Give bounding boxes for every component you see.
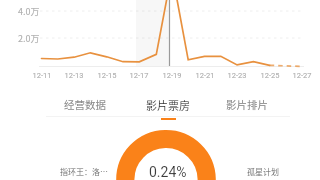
button[interactable]: 影片票房: [138, 96, 198, 121]
staticText: 12-21: [189, 71, 221, 80]
staticText: 0.24%: [149, 164, 187, 180]
staticText: 4.0万: [18, 5, 40, 18]
button[interactable]: 经营数据: [55, 96, 115, 118]
staticText: 12-17: [123, 71, 155, 80]
button[interactable]: 影片排片: [217, 96, 277, 118]
staticText: 孤星计划: [247, 166, 279, 178]
staticText: 12-11: [26, 71, 58, 80]
staticText: 12-13: [58, 71, 90, 80]
staticText: 12-15: [91, 71, 123, 80]
staticText: 影片排片: [226, 97, 268, 112]
staticText: 指环王：洛…: [60, 166, 108, 178]
staticText: 影片票房: [146, 97, 190, 113]
staticText: 12-19: [156, 71, 188, 80]
staticText: 12-25: [254, 71, 286, 80]
staticText: 12-27: [286, 71, 318, 80]
staticText: 经营数据: [64, 97, 106, 112]
staticText: 2.0万: [18, 32, 40, 45]
staticText: 12-23: [221, 71, 253, 80]
